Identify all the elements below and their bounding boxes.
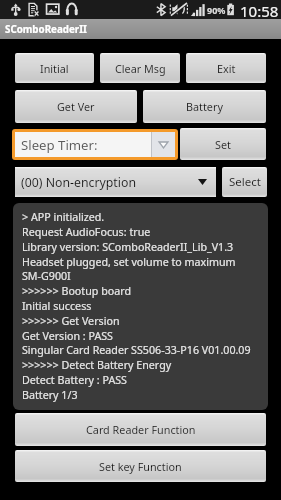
button[interactable]: Clear Msg [100, 53, 180, 83]
staticText: Clear Msg [115, 61, 166, 76]
staticText: Initial [40, 61, 69, 76]
staticText: Headset plugged, set volume to maximum [22, 255, 236, 270]
staticText: (00) Non-encryption [21, 174, 136, 191]
button[interactable]: Sleep Timer: [15, 132, 175, 157]
staticText: Detect Battery : PASS [22, 373, 127, 388]
staticText: Set key Function [99, 459, 182, 474]
button[interactable]: Battery [143, 90, 266, 123]
staticText: Request AudioFocus: true [22, 225, 151, 240]
staticText: >>>>>> Bootup board [22, 284, 131, 299]
button[interactable]: Card Reader Function [15, 413, 266, 446]
staticText: SComboReaderII [5, 23, 87, 36]
staticText: Initial success [22, 299, 92, 314]
button[interactable]: Initial [15, 53, 94, 83]
button[interactable]: Select [222, 167, 267, 197]
staticText: Select [229, 174, 261, 190]
staticText: SM-G900I [22, 269, 71, 284]
staticText: Get Ver [57, 99, 95, 114]
staticText: Get Version : PASS [22, 329, 113, 344]
button[interactable]: Get Ver [15, 90, 137, 123]
staticText: Battery [186, 99, 223, 114]
staticText: > APP initialized. [22, 210, 105, 225]
staticText: Card Reader Function [86, 422, 196, 437]
button[interactable]: Set key Function [15, 450, 266, 482]
staticText: >>>>>> Detect Battery Energy [22, 358, 172, 373]
button[interactable]: (00) Non-encryption [15, 167, 216, 197]
staticText: Set [215, 137, 231, 152]
staticText: 10:58 [240, 1, 279, 20]
staticText: Library version: SComboReaderII_Lib_V1.3 [22, 240, 234, 255]
button[interactable]: Set [180, 128, 266, 160]
staticText: 90% [207, 4, 226, 16]
staticText: Singular Card Reader SS506-33-P16 V01.00… [22, 343, 251, 358]
staticText: Sleep Timer: [21, 136, 98, 154]
staticText: Exit [217, 61, 236, 76]
staticText: Battery 1/3 [22, 388, 78, 403]
button[interactable]: Exit [186, 53, 266, 83]
staticText: >>>>>> Get Version [22, 314, 120, 329]
